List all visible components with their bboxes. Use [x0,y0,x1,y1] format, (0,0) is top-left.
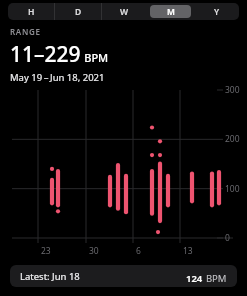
staticText: Y [214,6,220,18]
staticText: M [167,6,175,18]
staticText: 124 BPM [186,267,227,286]
button[interactable]: H [10,5,52,18]
button[interactable]: Y [196,5,237,18]
button[interactable]: D [57,5,99,18]
staticText: 11–229 BPM [10,40,109,69]
staticText: RANGE [10,26,41,37]
staticText: Latest: Jun 18 [20,270,80,283]
staticText: D [75,6,82,18]
staticText: W [120,6,129,18]
staticText: H [28,6,35,18]
button[interactable]: Latest: Jun 18 [10,265,237,287]
button[interactable]: W [104,5,145,18]
button[interactable]: M [150,5,191,18]
staticText: May 19 – Jun 18, 2021 [10,71,105,84]
